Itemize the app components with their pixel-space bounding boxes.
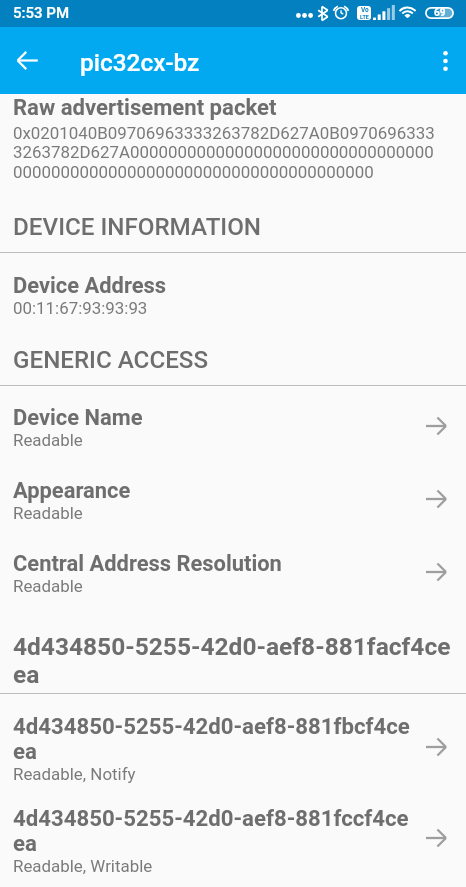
button[interactable]: 4d434850-5255-42d0-aef8-881facf4ce ea [0,618,466,693]
button[interactable]: Central Address Resolution [0,536,466,609]
button[interactable]: More options [425,27,466,94]
staticText: Appearance [13,478,131,504]
button[interactable]: Appearance [0,463,466,536]
staticText: Readable [13,576,83,596]
staticText: pic32cx-bz [80,48,200,77]
staticText: 4d434850-5255-42d0-aef8-881facf4ce ea [13,632,451,689]
staticText: 00:11:67:93:93:93 [13,298,148,318]
staticText: 69 [434,7,446,19]
staticText: GENERIC ACCESS [13,346,209,374]
staticText: Readable [13,503,83,523]
staticText: Readable, Writable [13,856,153,874]
staticText: Vo [361,6,369,14]
button[interactable]: 4d434850-5255-42d0-aef8-881fccf4ce ea [0,800,466,887]
staticText: LTE [360,14,369,20]
staticText: Readable [13,430,83,450]
staticText: 4d434850-5255-42d0-aef8-881fccf4ce ea [13,805,409,857]
button[interactable]: Device Address [0,259,466,331]
staticText: 4d434850-5255-42d0-aef8-881fbcf4ce ea [13,713,410,765]
staticText: 0x0201040B09706963333263782D627A0B097069… [13,123,435,183]
staticText: 5:53 PM [13,4,70,22]
staticText: Raw advertisement packet [13,94,277,120]
staticText: DEVICE INFORMATION [13,213,262,241]
staticText: Device Address [13,273,167,299]
button[interactable]: 4d434850-5255-42d0-aef8-881fbcf4ce ea [0,694,466,800]
button[interactable]: Navigate up [0,27,54,94]
button[interactable]: Device Name [0,391,466,463]
staticText: Central Address Resolution [13,551,282,577]
staticText: Readable, Notify [13,764,136,784]
staticText: Device Name [13,405,143,431]
